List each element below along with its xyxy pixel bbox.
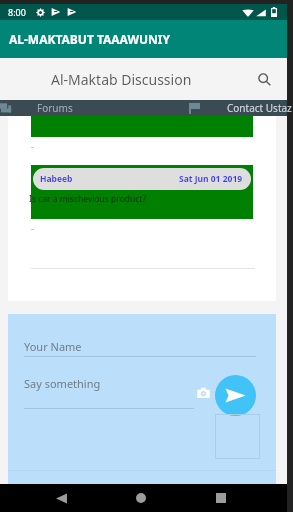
staticText: Your Name: [24, 339, 82, 354]
button[interactable]: Back: [45, 484, 77, 512]
staticText: Forums: [37, 101, 73, 115]
button[interactable]: AL-MAKTABUT TAAAWUNIY: [0, 20, 287, 58]
button[interactable]: Forums: [0, 100, 143, 116]
button[interactable]: Attach photo: [195, 384, 211, 400]
staticText: Contact Ustaz: [227, 101, 292, 115]
button[interactable]: Search: [254, 69, 274, 89]
staticText: Is car a mischevious product?: [29, 193, 147, 205]
button[interactable]: Send message: [215, 375, 256, 416]
staticText: Habeeb: [40, 173, 73, 185]
button[interactable]: Habeeb: [31, 165, 253, 219]
staticText: Al-Maktab Discussion: [51, 70, 192, 89]
staticText: AL-MAKTABUT TAAAWUNIY: [9, 31, 171, 47]
button[interactable]: Recent apps: [205, 484, 237, 512]
staticText: 8:00: [8, 6, 26, 18]
button[interactable]: Home: [125, 484, 157, 512]
staticText: -: [31, 140, 34, 152]
staticText: Say something: [24, 376, 101, 391]
button[interactable]: Contact Ustaz: [143, 100, 287, 116]
staticText: Sat Jun 01 2019: [179, 173, 243, 185]
staticText: -: [31, 222, 34, 234]
